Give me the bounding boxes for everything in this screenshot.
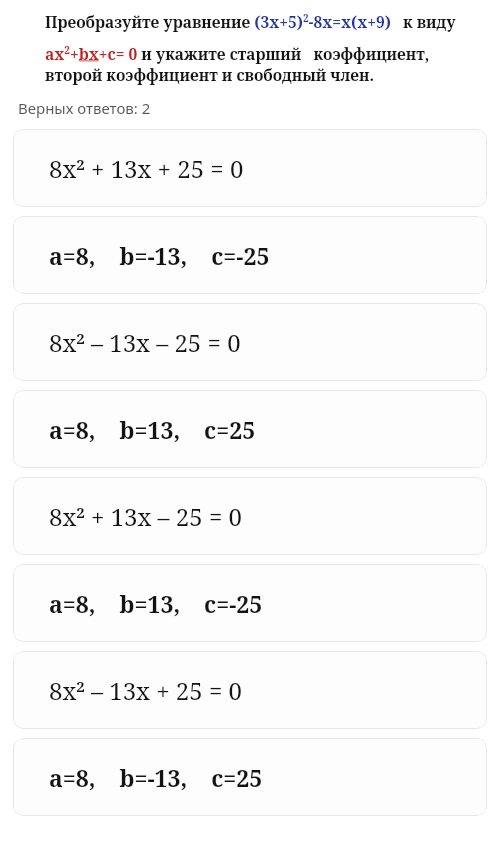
button[interactable]: a=8, b=13, c=25 — [13, 390, 487, 468]
button[interactable]: a=8, b=-13, c=25 — [13, 738, 487, 816]
staticText: 8x2 – 13x + 25 = 0 — [49, 674, 242, 707]
staticText: 8x2 + 13x – 25 = 0 — [49, 500, 242, 533]
button[interactable]: 8x2 + 13x – 25 = 0 — [13, 477, 487, 555]
staticText: a=8, b=-13, c=25 — [49, 762, 263, 793]
staticText: a=8, b=13, c=25 — [49, 414, 256, 445]
staticText: Верных ответов: 2 — [18, 98, 151, 118]
staticText: 8x2 – 13x – 25 = 0 — [49, 326, 241, 359]
button[interactable]: a=8, b=13, c=-25 — [13, 564, 487, 642]
staticText: 8x2 + 13x + 25 = 0 — [49, 152, 244, 185]
staticText: a=8, b=-13, c=-25 — [49, 240, 270, 271]
button[interactable]: 8x2 + 13x + 25 = 0 — [13, 129, 487, 207]
staticText: a=8, b=13, c=-25 — [49, 588, 263, 619]
button[interactable]: a=8, b=-13, c=-25 — [13, 216, 487, 294]
button[interactable]: 8x2 – 13x + 25 = 0 — [13, 651, 487, 729]
button[interactable]: 8x2 – 13x – 25 = 0 — [13, 303, 487, 381]
staticText: Преобразуйте уравнение (3x+5)2-8x=x(x+9)… — [45, 11, 488, 85]
